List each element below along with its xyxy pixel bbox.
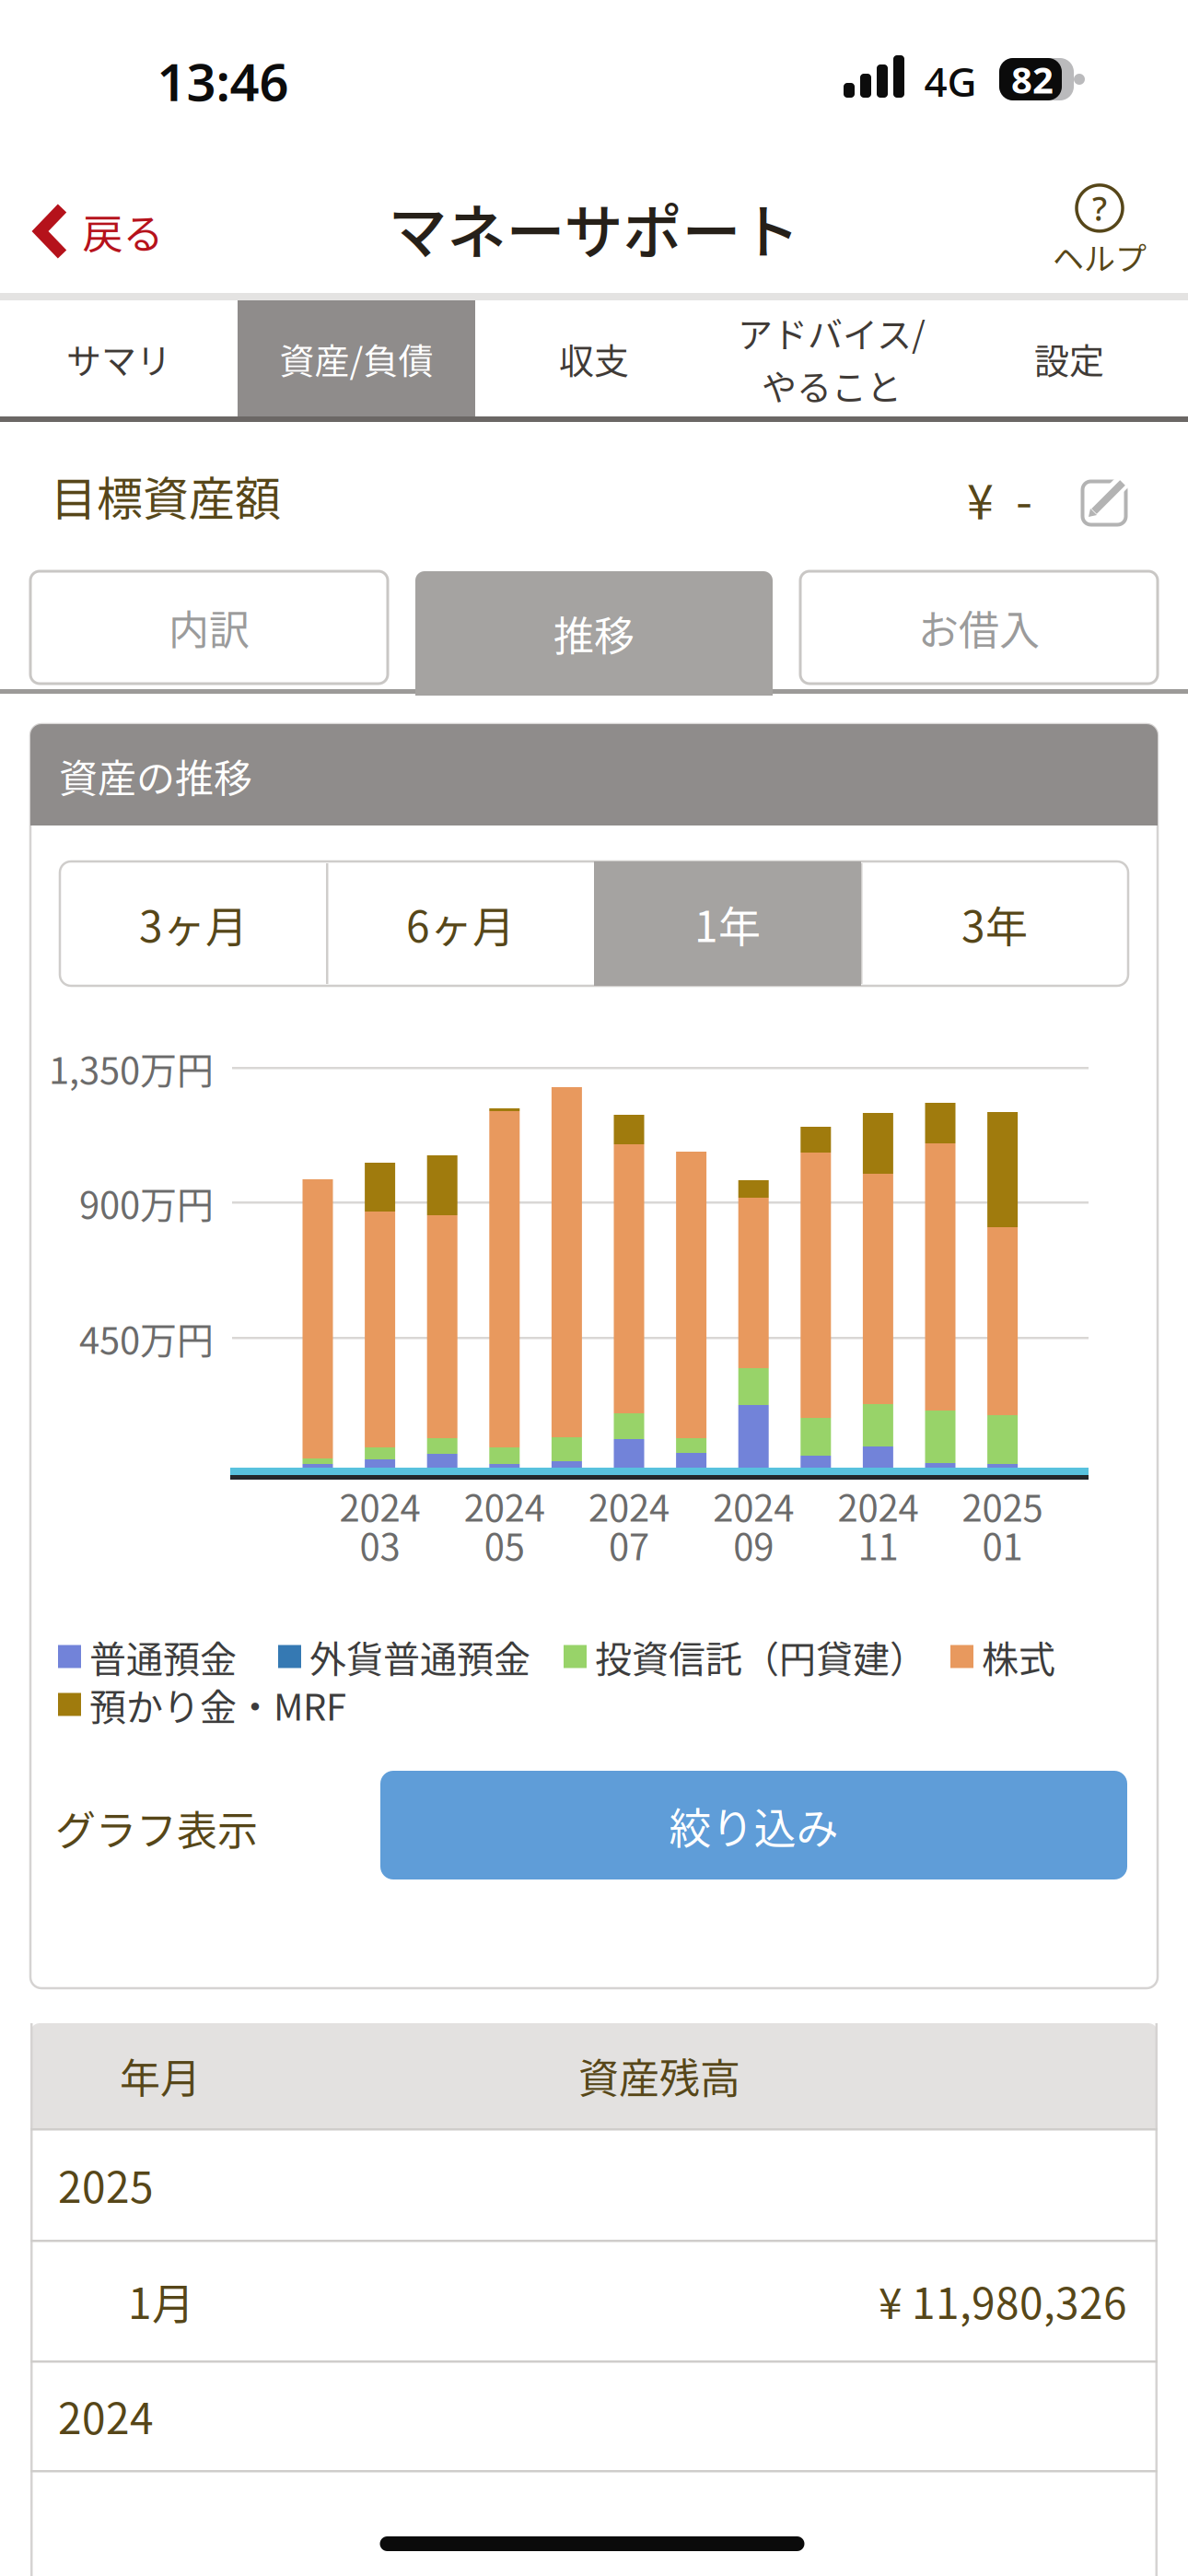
- staticText: 6ヶ月: [406, 893, 515, 954]
- staticText: 450万円: [79, 1311, 214, 1364]
- button[interactable]: 絞り込み: [380, 1771, 1127, 1879]
- staticText: ヘルプ: [1053, 234, 1147, 279]
- button[interactable]: 3ヶ月: [60, 861, 327, 986]
- button[interactable]: 6ヶ月: [327, 861, 594, 986]
- staticText: 07: [609, 1517, 649, 1571]
- button[interactable]: 編集: [1078, 477, 1130, 529]
- button[interactable]: 収支: [475, 300, 713, 416]
- staticText: 年月: [120, 2046, 201, 2105]
- staticText: 09: [733, 1517, 774, 1571]
- button[interactable]: アドバイス/: [713, 300, 950, 416]
- staticText: グラフ表示: [55, 1799, 258, 1857]
- button[interactable]: 1年: [594, 861, 861, 986]
- staticText: 1月: [128, 2270, 194, 2331]
- staticText: 預かり金・MRF: [89, 1678, 346, 1731]
- staticText: ?: [1092, 186, 1107, 230]
- staticText: 05: [484, 1517, 525, 1571]
- staticText: ¥ 11,980,326: [879, 2270, 1127, 2331]
- button[interactable]: お借入: [800, 571, 1158, 684]
- staticText: 外貨普通預金: [309, 1630, 530, 1683]
- staticText: 2024: [464, 1479, 545, 1532]
- staticText: 11: [858, 1517, 898, 1571]
- button[interactable]: 資産/負債: [238, 300, 475, 416]
- staticText: 収支: [559, 333, 629, 384]
- staticText: アドバイス/: [738, 307, 926, 357]
- staticText: 絞り込み: [669, 1794, 839, 1856]
- staticText: 2025: [58, 2154, 154, 2215]
- staticText: 内訳: [169, 598, 250, 657]
- button[interactable]: 3年: [861, 861, 1128, 986]
- staticText: 900万円: [79, 1176, 214, 1229]
- staticText: ¥ -: [967, 464, 1032, 533]
- staticText: 投資信託（円貸建）: [595, 1630, 926, 1683]
- staticText: 資産/負債: [280, 333, 433, 384]
- staticText: 2025: [962, 1479, 1043, 1532]
- staticText: 2024: [58, 2385, 154, 2446]
- staticText: 目標資産額: [51, 462, 281, 529]
- staticText: 1年: [694, 893, 761, 954]
- staticText: 4G: [924, 54, 977, 108]
- staticText: 戻る: [82, 202, 163, 261]
- staticText: お借入: [918, 598, 1040, 657]
- button[interactable]: 戻る: [33, 187, 166, 275]
- button[interactable]: ?: [1031, 184, 1169, 280]
- button[interactable]: サマリ: [0, 300, 238, 416]
- staticText: 資産残高: [578, 2046, 740, 2105]
- staticText: 13:46: [157, 47, 289, 115]
- staticText: 設定: [1034, 333, 1104, 384]
- staticText: 3年: [961, 893, 1028, 954]
- staticText: 普通預金: [89, 1630, 237, 1683]
- staticText: 2024: [837, 1479, 919, 1532]
- staticText: 2024: [713, 1479, 794, 1532]
- staticText: 2024: [588, 1479, 670, 1532]
- staticText: 株式: [982, 1630, 1055, 1683]
- staticText: 1,350万円: [49, 1041, 214, 1094]
- button[interactable]: 推移: [415, 571, 773, 696]
- staticText: 推移: [553, 604, 635, 663]
- staticText: 2024: [339, 1479, 420, 1532]
- staticText: 資産の推移: [59, 748, 252, 804]
- staticText: 3ヶ月: [139, 893, 248, 954]
- staticText: サマリ: [66, 333, 171, 384]
- button[interactable]: 内訳: [30, 571, 388, 684]
- staticText: 03: [360, 1517, 400, 1571]
- staticText: 82: [1011, 55, 1054, 104]
- staticText: 01: [982, 1517, 1023, 1571]
- button[interactable]: 設定: [950, 300, 1188, 416]
- staticText: やること: [762, 359, 902, 410]
- staticText: マネーサポート: [388, 185, 800, 270]
